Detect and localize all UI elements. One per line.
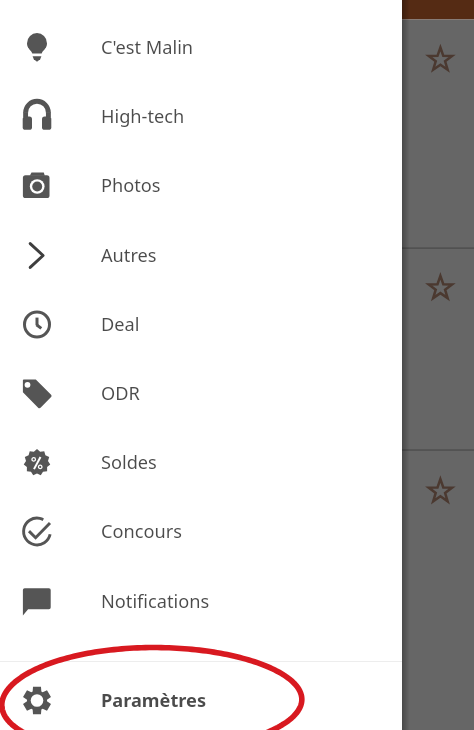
staticText: Soldes — [101, 450, 157, 475]
button[interactable]: Autres — [0, 221, 402, 290]
button[interactable]: ODR — [0, 359, 402, 428]
button[interactable]: Photos — [0, 151, 402, 220]
staticText: ODR — [101, 381, 140, 406]
staticText: Autres — [101, 243, 157, 268]
button[interactable]: High-tech — [0, 82, 402, 151]
staticText: High-tech — [101, 104, 185, 129]
staticText: Photos — [101, 173, 161, 198]
button[interactable]: Paramètres — [0, 666, 402, 730]
button[interactable]: Deal — [0, 290, 402, 359]
staticText: Notifications — [101, 589, 210, 614]
button[interactable]: Concours — [0, 497, 402, 566]
staticText: Paramètres — [101, 688, 207, 713]
staticText: Concours — [101, 519, 182, 544]
staticText: Deal — [101, 312, 140, 337]
button[interactable]: Soldes — [0, 428, 402, 497]
button[interactable]: Close navigation drawer — [0, 0, 474, 730]
button[interactable]: Notifications — [0, 567, 402, 636]
staticText: C'est Malin — [101, 35, 194, 60]
button[interactable]: C'est Malin — [0, 13, 402, 82]
